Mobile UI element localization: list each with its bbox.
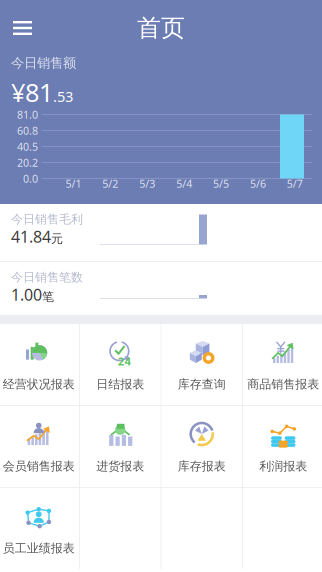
staticText: 5/3: [139, 176, 155, 191]
staticText: 5/4: [176, 176, 192, 191]
staticText: 40.5: [17, 139, 38, 154]
button[interactable]: 商品销售报表: [243, 324, 322, 405]
staticText: 利润报表: [259, 459, 307, 474]
staticText: 81.0: [17, 107, 38, 122]
staticText: 库存查询: [178, 377, 226, 392]
button[interactable]: 进货报表: [80, 406, 160, 487]
staticText: 60.8: [17, 123, 38, 138]
button[interactable]: 库存查询: [161, 324, 242, 405]
staticText: 5/2: [102, 176, 118, 191]
staticText: 员工业绩报表: [3, 541, 75, 556]
staticText: 5/6: [250, 176, 266, 191]
staticText: 元: [51, 231, 63, 246]
staticText: 首页: [137, 13, 185, 43]
staticText: 今日销售额: [11, 55, 76, 71]
staticText: 1.00: [11, 284, 42, 305]
button[interactable]: Menu: [0, 8, 45, 48]
staticText: 41.84: [11, 226, 51, 247]
button[interactable]: 员工业绩报表: [0, 488, 79, 569]
staticText: 5/1: [65, 176, 81, 191]
staticText: 5/5: [213, 176, 229, 191]
staticText: 经营状况报表: [3, 377, 75, 392]
staticText: 会员销售报表: [3, 459, 75, 474]
staticText: .53: [53, 87, 73, 106]
button[interactable]: 经营状况报表: [0, 324, 79, 405]
staticText: 5/7: [287, 176, 303, 191]
staticText: 今日销售毛利: [11, 212, 83, 227]
button[interactable]: 利润报表: [243, 406, 322, 487]
staticText: 进货报表: [96, 459, 144, 474]
staticText: ¥81: [11, 75, 53, 109]
staticText: 24: [117, 354, 133, 372]
staticText: 商品销售报表: [247, 377, 319, 392]
staticText: 今日销售笔数: [11, 270, 83, 285]
staticText: 日结报表: [96, 377, 144, 392]
staticText: 笔: [42, 289, 54, 304]
button[interactable]: 会员销售报表: [0, 406, 79, 487]
staticText: 20.2: [17, 155, 38, 170]
button[interactable]: 库存报表: [161, 406, 242, 487]
staticText: 0.0: [23, 171, 38, 186]
button[interactable]: 24: [80, 324, 160, 405]
staticText: 库存报表: [178, 459, 226, 474]
